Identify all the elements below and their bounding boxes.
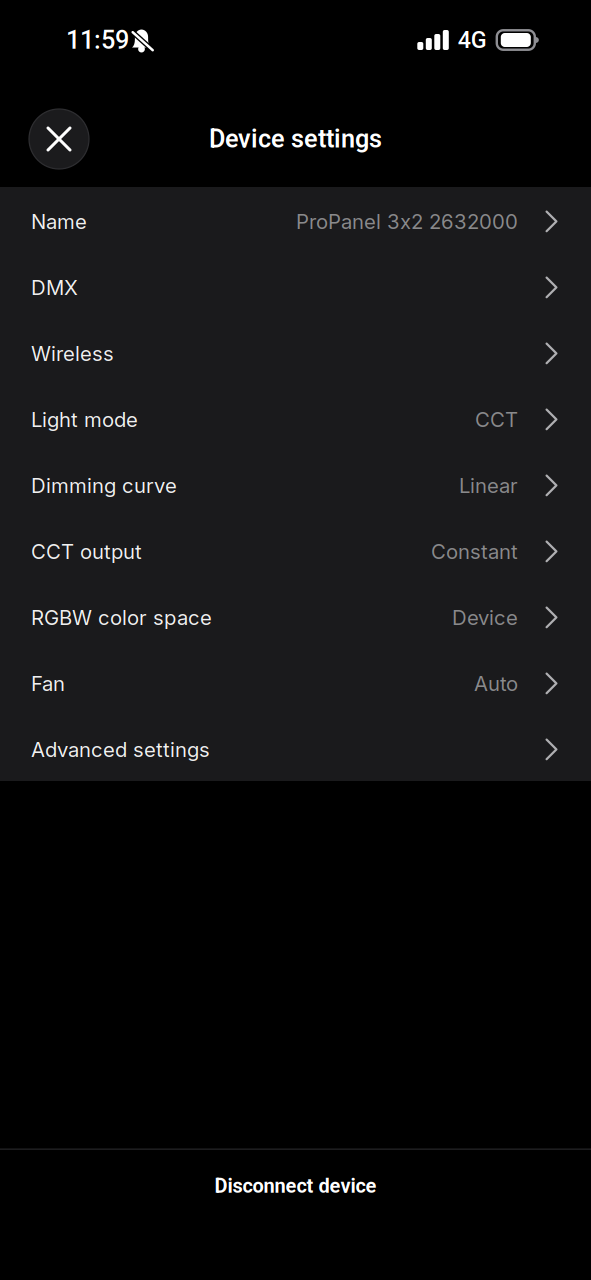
staticText: Wireless [31,341,114,366]
staticText: Dimming curve [31,473,177,498]
staticText: Auto [474,671,518,696]
staticText: ProPanel 3x2 2632000 [296,209,518,234]
staticText: RGBW color space [31,605,212,630]
staticText: Device settings [209,124,382,154]
staticText: Advanced settings [31,737,210,762]
button[interactable]: Light mode [0,385,591,451]
staticText: Light mode [31,407,138,432]
staticText: Linear [459,473,518,498]
staticText: Constant [431,539,518,564]
staticText: DMX [31,275,78,300]
staticText: CCT [475,407,518,432]
button[interactable]: Disconnect device [0,1150,591,1221]
staticText: Name [31,209,87,234]
staticText: Disconnect device [214,1174,376,1198]
staticText: CCT output [31,539,142,564]
button[interactable]: CCT output [0,517,591,583]
button[interactable]: Dimming curve [0,451,591,517]
button[interactable]: RGBW color space [0,583,591,649]
button[interactable]: Close [29,109,89,169]
button[interactable]: Wireless [0,319,591,385]
button[interactable]: Name [0,187,591,253]
staticText: 4G [458,26,487,54]
button[interactable]: DMX [0,253,591,319]
button[interactable]: Fan [0,649,591,715]
staticText: Device [452,605,518,630]
button[interactable]: Advanced settings [0,715,591,781]
staticText: Fan [31,671,65,696]
staticText: 11:59 [66,25,129,55]
